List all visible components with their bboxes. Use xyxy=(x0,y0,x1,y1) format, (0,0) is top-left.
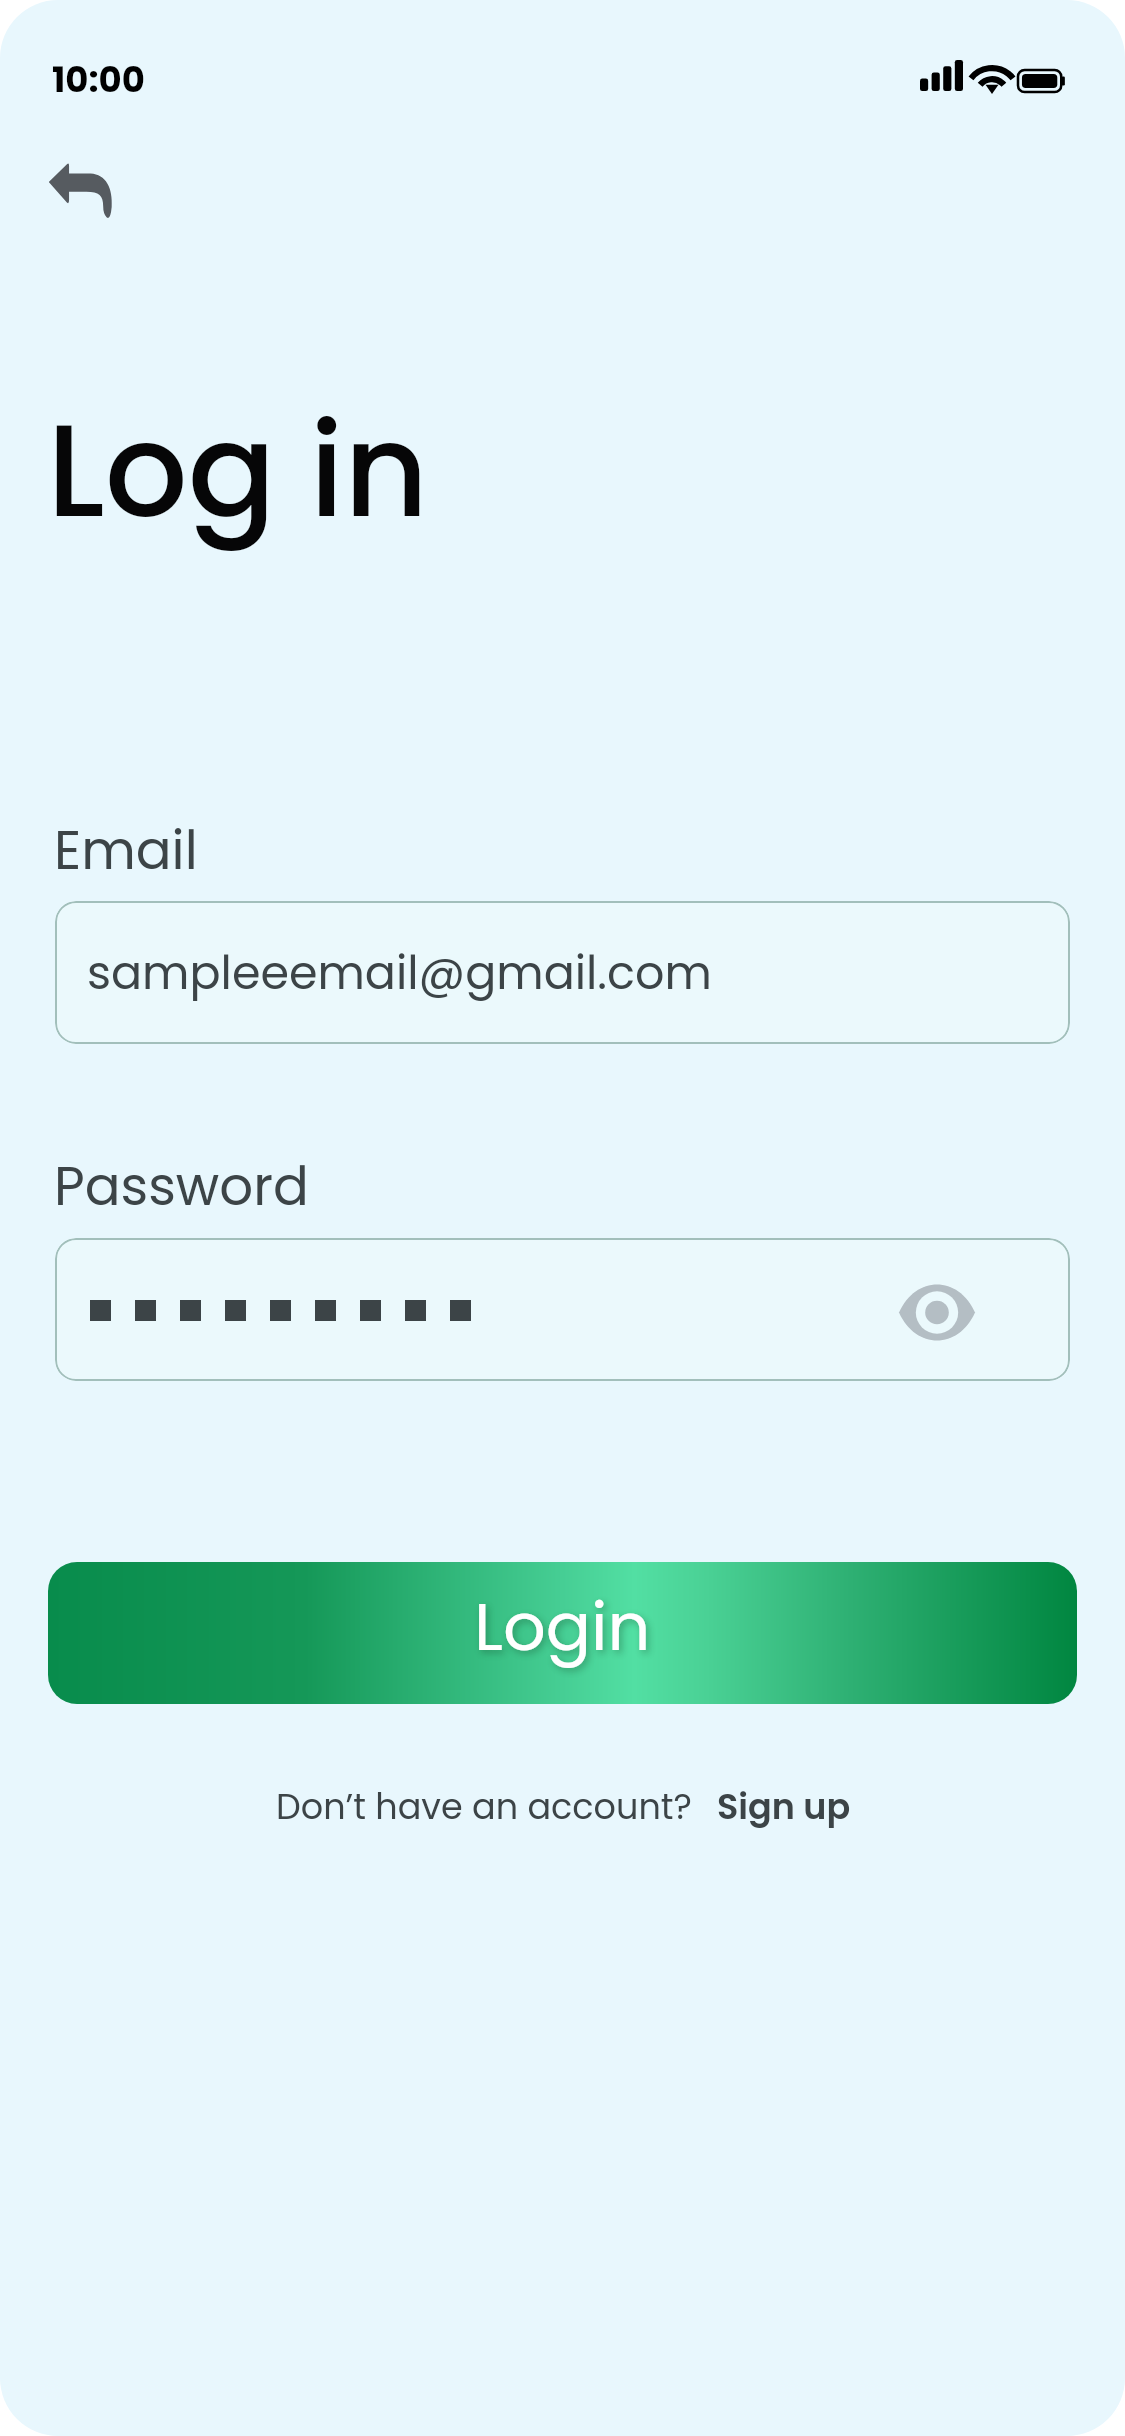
button[interactable]: Sign up xyxy=(705,1774,863,1839)
staticText: Login xyxy=(474,1580,651,1674)
button[interactable]: Back xyxy=(20,130,140,250)
button[interactable]: Show password xyxy=(55,1238,1070,1381)
staticText: sampleeemail@gmail.com xyxy=(87,941,712,1005)
staticText: Log in xyxy=(47,379,429,561)
staticText: Sign up xyxy=(717,1782,851,1831)
staticText: Password xyxy=(54,1149,309,1223)
staticText: Don’t have an account? xyxy=(276,1782,692,1831)
button[interactable]: sampleeemail@gmail.com xyxy=(55,901,1070,1044)
button[interactable]: Show password xyxy=(889,1262,985,1358)
staticText: Email xyxy=(54,813,198,887)
staticText: 10:00 xyxy=(52,55,145,105)
button[interactable]: Login xyxy=(48,1562,1077,1704)
